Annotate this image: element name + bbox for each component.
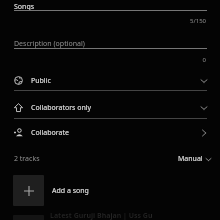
button[interactable]: Add a song [13,175,203,206]
staticText: Latest Guruji Bhajan | Uss Gu [50,211,153,220]
staticText: 0 [14,56,206,64]
button[interactable]: Collaborators only [14,97,207,118]
button[interactable]: Collaborate [14,122,207,143]
staticText: Public [31,76,51,86]
staticText: Manual [178,154,203,164]
staticText: Collaborators only [31,103,92,113]
staticText: Songs [14,2,35,12]
button[interactable]: Public [14,70,207,91]
staticText: 2 tracks [14,154,40,164]
staticText: 5/150 [14,17,206,25]
staticText: Collaborate [31,128,69,138]
staticText: Description (optional) [14,39,85,49]
button[interactable]: Manual [176,151,213,167]
staticText: Add a song [52,186,89,196]
